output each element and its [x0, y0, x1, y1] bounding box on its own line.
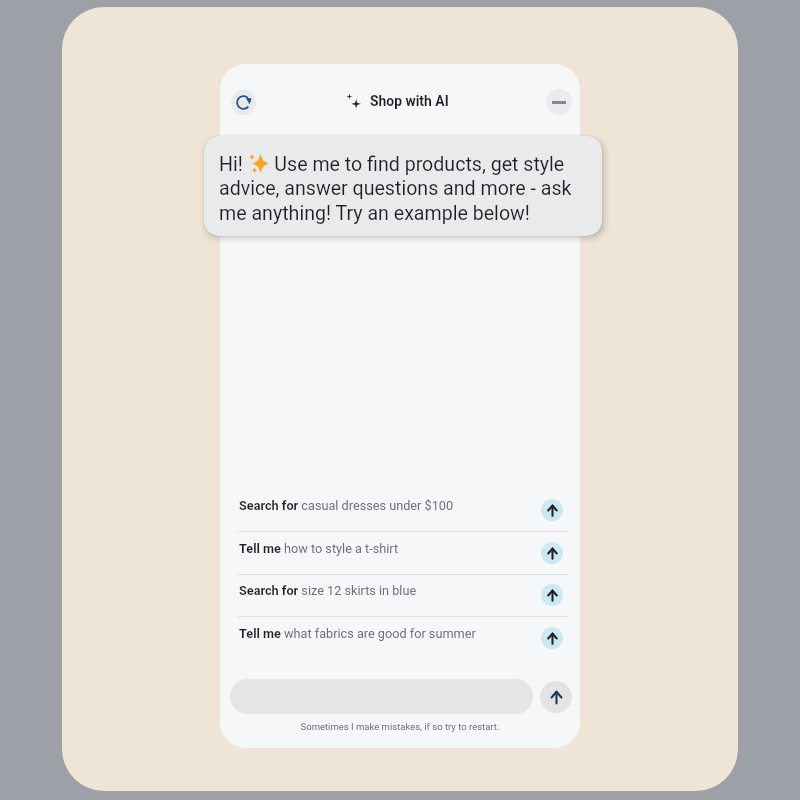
button[interactable]: Restart: [231, 90, 256, 115]
staticText: Shop with AI: [370, 93, 449, 109]
button[interactable]: Tell me how to style a t-shirt: [220, 527, 580, 570]
staticText: Tell me how to style a t-shirt: [239, 541, 399, 556]
staticText: Tell me what fabrics are good for summer: [239, 626, 476, 641]
button[interactable]: Search for size 12 skirts in blue: [220, 569, 580, 612]
button[interactable]: Search for casual dresses under $100: [220, 484, 580, 527]
staticText: Sometimes I make mistakes, if so try to …: [220, 721, 580, 732]
staticText: Search for size 12 skirts in blue: [239, 583, 417, 598]
button[interactable]: Tell me what fabrics are good for summer: [220, 612, 580, 655]
staticText: Search for casual dresses under $100: [239, 498, 454, 513]
staticText: Hi! [*] Use me to find products, get sty…: [219, 153, 587, 225]
button[interactable]: Send: [540, 681, 572, 713]
button[interactable]: Minimize: [546, 89, 572, 115]
